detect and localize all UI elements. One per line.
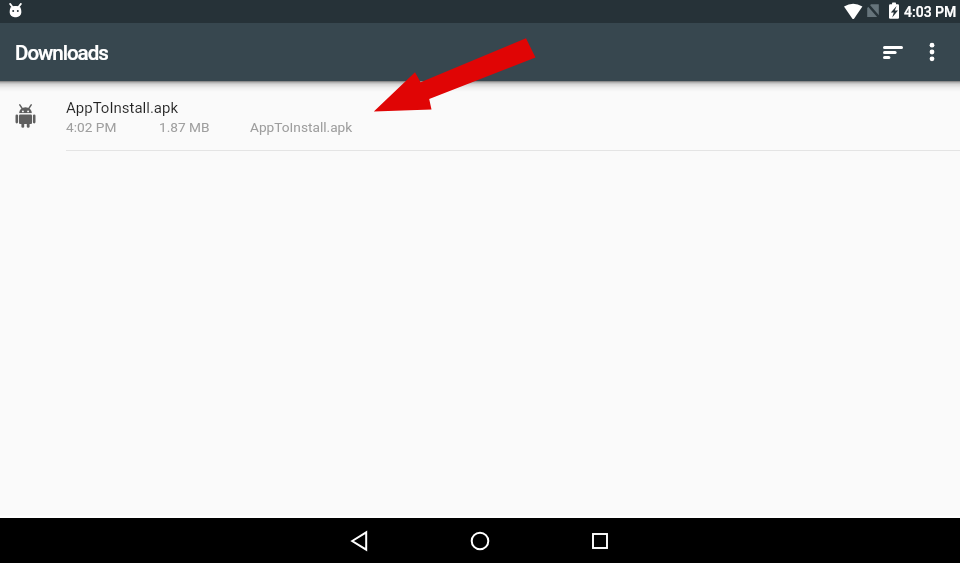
staticText: Downloads: [15, 41, 108, 65]
button[interactable]: Home: [444, 518, 516, 563]
button[interactable]: Back: [324, 518, 396, 563]
button[interactable]: AppToInstall.apk: [0, 81, 960, 151]
staticText: 4:02 PM: [66, 119, 159, 135]
staticText: AppToInstall.apk: [250, 119, 353, 135]
button[interactable]: More options: [912, 28, 960, 76]
button[interactable]: Recent apps: [564, 518, 636, 563]
staticText: 1.87 MB: [159, 119, 250, 135]
staticText: AppToInstall.apk: [66, 99, 179, 117]
button[interactable]: Sort: [864, 28, 912, 76]
staticText: 4:03 PM: [904, 4, 957, 20]
